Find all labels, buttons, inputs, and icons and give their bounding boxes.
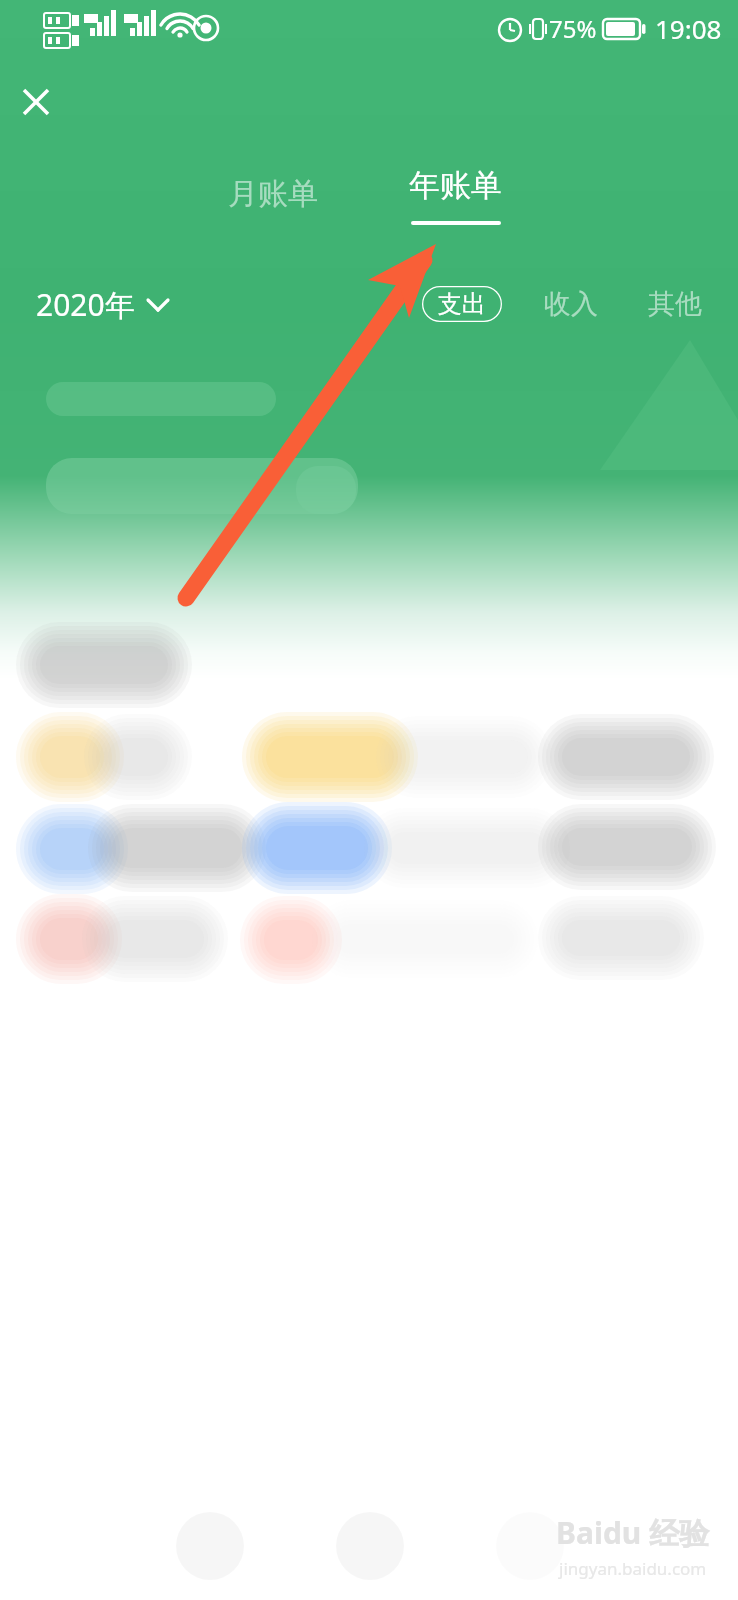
staticText: jingyan.baidu.com	[559, 1557, 707, 1580]
button[interactable]: Close	[8, 74, 64, 130]
staticText: 其他	[648, 287, 702, 321]
button[interactable]: 年账单	[400, 166, 510, 234]
button[interactable]: 收入	[544, 287, 598, 321]
staticText: 2020年	[36, 284, 135, 325]
button[interactable]: 其他	[648, 287, 702, 321]
staticText: Baidu 经验	[556, 1512, 710, 1553]
button[interactable]: 月账单	[218, 168, 328, 220]
button[interactable]: 2020年	[36, 284, 169, 325]
staticText: 75%	[549, 12, 597, 45]
staticText: 月账单	[228, 175, 318, 213]
staticText: 收入	[544, 287, 598, 321]
staticText: 年账单	[409, 166, 502, 205]
staticText: 支出	[438, 289, 486, 319]
button[interactable]: 支出	[422, 286, 502, 322]
staticText: 19:08	[655, 11, 722, 46]
